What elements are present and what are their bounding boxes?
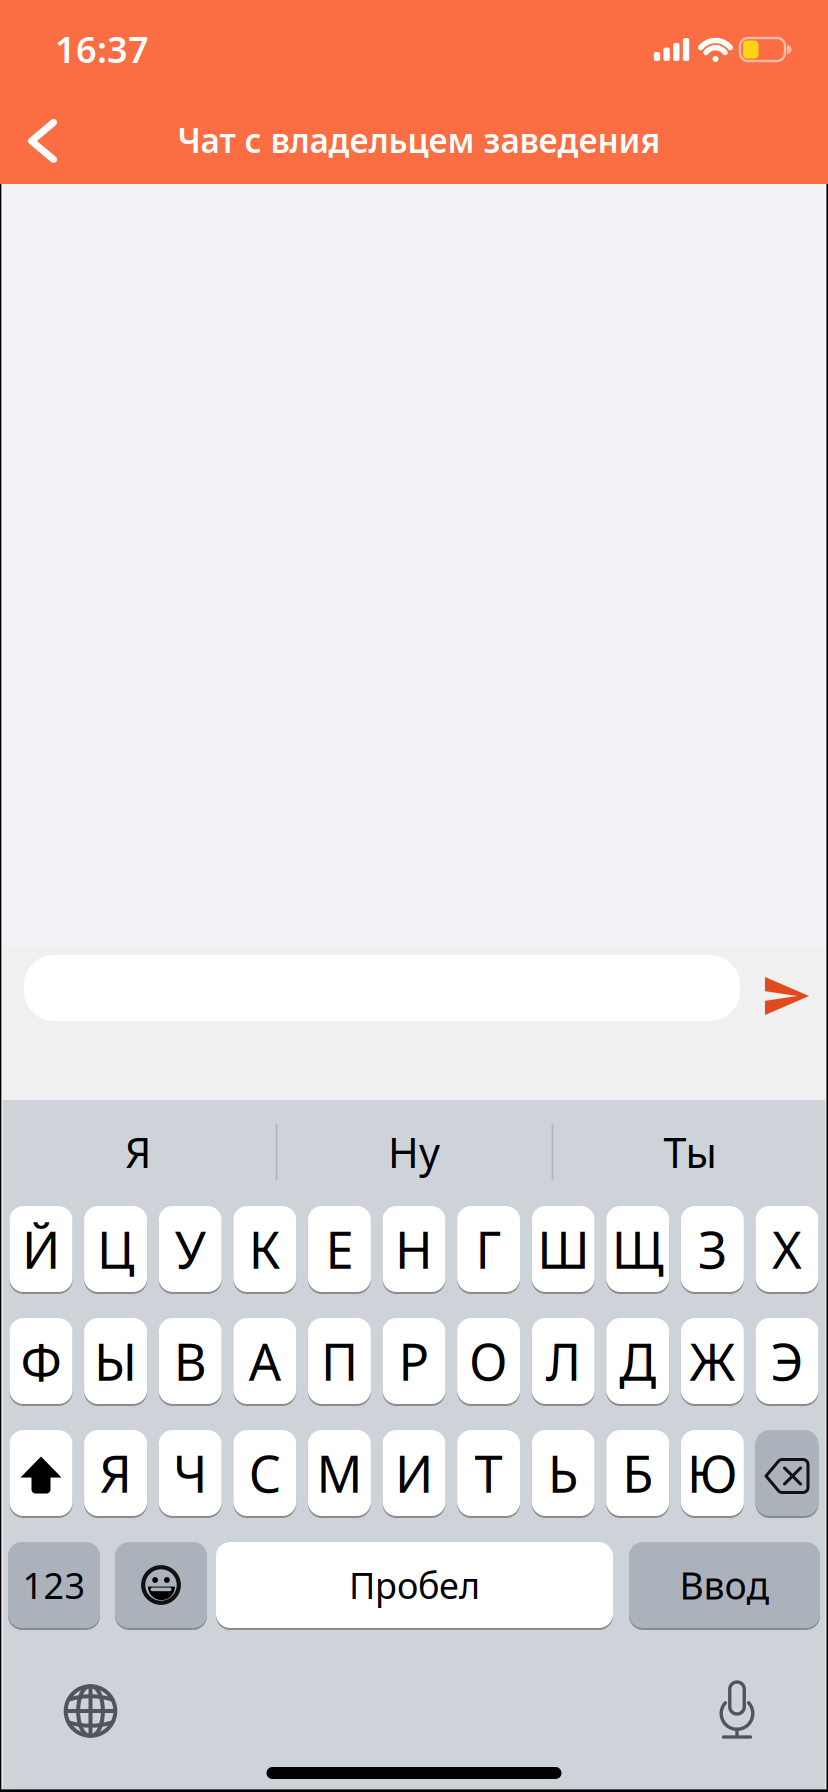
staticText: Щ — [612, 1215, 664, 1283]
staticText: Ты — [663, 1125, 716, 1179]
staticText: М — [316, 1439, 362, 1507]
staticText: Пробел — [349, 1561, 480, 1609]
button[interactable]: Ф — [9, 1317, 72, 1405]
staticText: В — [174, 1327, 207, 1395]
staticText: Ь — [548, 1439, 579, 1507]
button[interactable]: Delete — [755, 1429, 818, 1517]
staticText: С — [249, 1439, 281, 1507]
button[interactable]: Back — [12, 111, 72, 171]
staticText: Й — [22, 1215, 60, 1283]
staticText: Т — [475, 1439, 503, 1507]
staticText: Ф — [20, 1327, 61, 1395]
staticText: Э — [770, 1327, 803, 1395]
button[interactable]: Э — [755, 1317, 818, 1405]
button[interactable]: Ч — [159, 1429, 222, 1517]
button[interactable]: Ты — [570, 1107, 810, 1197]
button[interactable]: К — [233, 1205, 296, 1293]
button[interactable]: Emoji — [115, 1541, 207, 1629]
button[interactable]: Ж — [681, 1317, 744, 1405]
staticText: Г — [476, 1215, 502, 1283]
button[interactable]: А — [233, 1317, 296, 1405]
staticText: Чат с владельцем заведения — [177, 118, 660, 162]
staticText: А — [249, 1327, 281, 1395]
staticText: Ч — [173, 1439, 207, 1507]
button[interactable]: Ы — [84, 1317, 147, 1405]
staticText: Ж — [689, 1327, 735, 1395]
staticText: Р — [398, 1327, 429, 1395]
button[interactable]: Dictate — [702, 1670, 772, 1750]
staticText: Я — [125, 1125, 151, 1179]
staticText: Ц — [97, 1215, 134, 1283]
button[interactable]: Ш — [532, 1205, 595, 1293]
staticText: Д — [619, 1327, 656, 1395]
button[interactable]: Й — [9, 1205, 72, 1293]
staticText: Е — [325, 1215, 353, 1283]
button[interactable]: Send — [757, 968, 817, 1024]
staticText: З — [698, 1215, 727, 1283]
staticText: И — [395, 1439, 433, 1507]
staticText: Б — [622, 1439, 653, 1507]
button[interactable]: Т — [457, 1429, 520, 1517]
button[interactable]: Е — [308, 1205, 371, 1293]
staticText: Л — [546, 1327, 581, 1395]
button[interactable]: М — [308, 1429, 371, 1517]
button[interactable]: З — [681, 1205, 744, 1293]
button[interactable]: Я — [18, 1107, 258, 1197]
staticText: У — [175, 1215, 206, 1283]
staticText: Ю — [687, 1439, 738, 1507]
button[interactable]: Я — [84, 1429, 147, 1517]
staticText: 123 — [22, 1561, 85, 1609]
staticText: Х — [772, 1215, 802, 1283]
button[interactable]: Р — [382, 1317, 445, 1405]
button[interactable]: Д — [606, 1317, 669, 1405]
staticText: Ы — [94, 1327, 137, 1395]
staticText: Н — [395, 1215, 433, 1283]
button[interactable]: Ь — [532, 1429, 595, 1517]
button[interactable]: И — [382, 1429, 445, 1517]
button[interactable]: Ю — [681, 1429, 744, 1517]
staticText: 16:37 — [55, 25, 149, 73]
button[interactable]: Л — [532, 1317, 595, 1405]
staticText: Ввод — [679, 1560, 769, 1610]
button[interactable]: Б — [606, 1429, 669, 1517]
button[interactable]: Г — [457, 1205, 520, 1293]
staticText: О — [469, 1327, 508, 1395]
button[interactable]: Ц — [84, 1205, 147, 1293]
button[interactable]: 123 — [8, 1541, 100, 1629]
button[interactable]: С — [233, 1429, 296, 1517]
button[interactable]: Х — [755, 1205, 818, 1293]
staticText: Я — [100, 1439, 132, 1507]
staticText: Ну — [388, 1125, 440, 1179]
button[interactable]: Next keyboard — [50, 1671, 130, 1751]
staticText: Ш — [537, 1215, 589, 1283]
staticText: К — [249, 1215, 281, 1283]
button[interactable]: Ну — [294, 1107, 534, 1197]
button[interactable]: Щ — [606, 1205, 669, 1293]
staticText: П — [321, 1327, 358, 1395]
button[interactable]: У — [159, 1205, 222, 1293]
button[interactable]: Пробел — [216, 1541, 613, 1629]
button[interactable]: П — [308, 1317, 371, 1405]
button[interactable]: В — [159, 1317, 222, 1405]
button[interactable]: Ввод — [629, 1541, 820, 1629]
button[interactable]: Н — [382, 1205, 445, 1293]
button[interactable]: Shift — [9, 1429, 72, 1517]
button[interactable]: О — [457, 1317, 520, 1405]
